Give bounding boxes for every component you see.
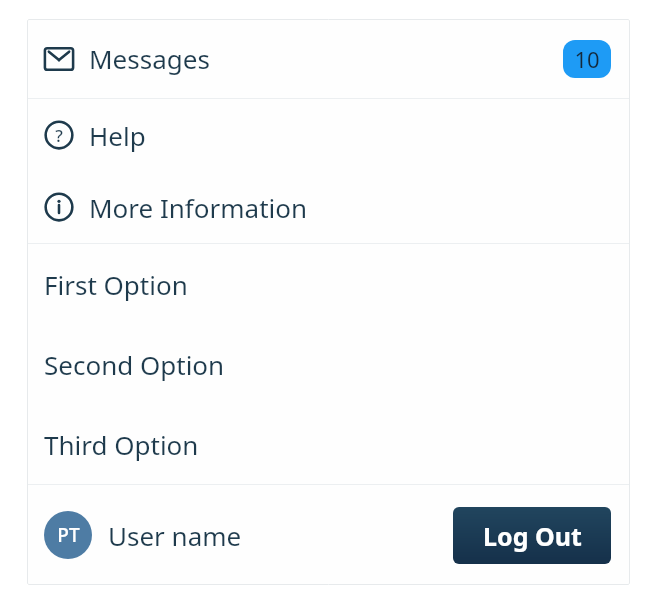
- staticText: Third Option: [44, 427, 199, 462]
- staticText: PT: [57, 522, 80, 548]
- button[interactable]: ?: [27, 99, 630, 171]
- button[interactable]: Second Option: [27, 324, 630, 404]
- staticText: Messages: [89, 41, 210, 76]
- staticText: ?: [55, 124, 63, 147]
- staticText: More Information: [89, 190, 308, 225]
- staticText: 10: [574, 44, 600, 74]
- staticText: Help: [89, 118, 146, 153]
- button[interactable]: User avatar PT: [44, 511, 92, 559]
- staticText: First Option: [44, 267, 188, 302]
- button[interactable]: Log Out: [453, 507, 611, 564]
- button[interactable]: Messages: [27, 19, 630, 98]
- button[interactable]: First Option: [27, 244, 630, 324]
- button[interactable]: More Information: [27, 171, 630, 243]
- button[interactable]: Third Option: [27, 404, 630, 484]
- staticText: User name: [108, 518, 242, 553]
- staticText: Second Option: [44, 347, 225, 382]
- staticText: Log Out: [483, 519, 582, 553]
